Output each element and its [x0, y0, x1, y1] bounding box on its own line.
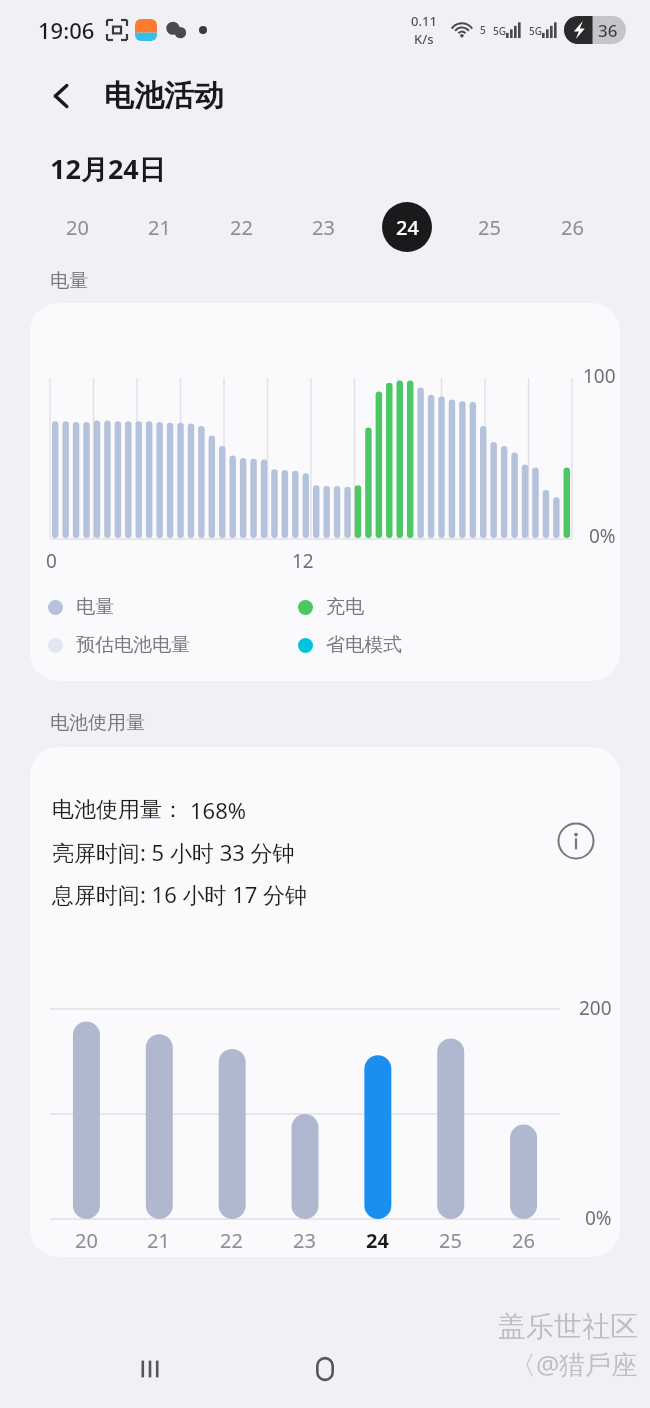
staticText: 5: [480, 23, 486, 37]
staticText: 0%: [585, 1205, 612, 1231]
button[interactable]: 22: [200, 199, 282, 255]
button[interactable]: Home: [290, 1334, 360, 1404]
staticText: 24: [396, 214, 419, 241]
staticText: K/s: [414, 30, 434, 48]
staticText: 25: [439, 1227, 462, 1254]
staticText: 电量: [76, 595, 114, 619]
staticText: 12: [292, 548, 314, 574]
button[interactable]: 24: [365, 199, 448, 255]
staticText: 22: [220, 1227, 243, 1254]
staticText: 电池活动: [104, 77, 224, 115]
staticText: 12月24日: [50, 150, 166, 187]
staticText: 19:06: [38, 15, 95, 45]
button[interactable]: 20: [36, 199, 118, 255]
staticText: 23: [293, 1227, 316, 1254]
button[interactable]: 25: [448, 199, 531, 255]
staticText: 充电: [326, 595, 364, 619]
staticText: 21: [147, 1227, 170, 1254]
staticText: 168%: [190, 795, 247, 825]
staticText: 26: [512, 1227, 535, 1254]
staticText: 电池使用量：: [52, 796, 184, 824]
staticText: 36: [598, 19, 618, 42]
staticText: 25: [478, 214, 501, 241]
button[interactable]: Recents: [115, 1334, 185, 1404]
button[interactable]: 21: [118, 199, 200, 255]
staticText: 盖乐世社区: [498, 1309, 638, 1344]
button[interactable]: Back: [34, 68, 90, 124]
button[interactable]: 23: [282, 199, 365, 255]
button[interactable]: Info: [554, 819, 598, 863]
staticText: 预估电池电量: [76, 633, 190, 657]
staticText: 5G: [529, 24, 542, 38]
staticText: 电量: [50, 269, 88, 293]
staticText: 〈@猎戶座: [510, 1346, 638, 1382]
staticText: 23: [312, 214, 335, 241]
staticText: 100: [583, 363, 616, 389]
button[interactable]: 26: [531, 199, 614, 255]
staticText: 省电模式: [326, 633, 402, 657]
staticText: 亮屏时间: 5 小时 33 分钟: [52, 837, 295, 867]
staticText: 5G: [493, 24, 506, 38]
staticText: 24: [366, 1227, 389, 1254]
staticText: 息屏时间: 16 小时 17 分钟: [52, 879, 308, 909]
staticText: 200: [579, 995, 612, 1021]
staticText: 0: [46, 548, 57, 574]
staticText: 0.11: [411, 12, 437, 30]
staticText: 26: [561, 214, 584, 241]
staticText: 电池使用量: [50, 711, 145, 735]
staticText: 22: [230, 214, 253, 241]
staticText: 0%: [589, 523, 616, 549]
staticText: 20: [75, 1227, 98, 1254]
staticText: 21: [148, 214, 171, 241]
staticText: 20: [66, 214, 89, 241]
